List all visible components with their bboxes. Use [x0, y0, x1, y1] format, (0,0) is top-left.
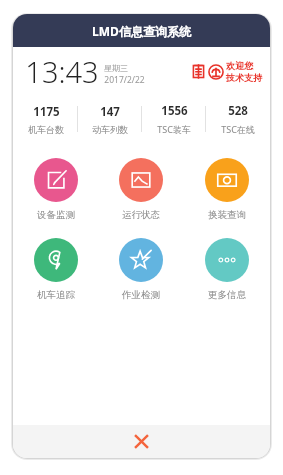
- staticText: 13:43: [25, 52, 99, 91]
- staticText: 机车台数: [28, 124, 64, 135]
- button[interactable]: 机车追踪: [13, 238, 98, 301]
- button[interactable]: 设备监测: [13, 158, 98, 221]
- staticText: 更多信息: [208, 289, 246, 301]
- staticText: 1175: [33, 104, 60, 120]
- staticText: 星期三: [104, 63, 128, 73]
- button[interactable]: 1175: [13, 96, 78, 142]
- staticText: 设备监测: [37, 209, 75, 221]
- button[interactable]: 关闭: [13, 425, 270, 458]
- button[interactable]: 528: [206, 96, 270, 142]
- staticText: 欢迎您: [226, 60, 253, 71]
- staticText: TSC装车: [157, 123, 191, 135]
- button[interactable]: 1556: [142, 96, 206, 142]
- button[interactable]: 作业检测: [98, 238, 184, 301]
- staticText: 动车列数: [92, 124, 128, 135]
- staticText: 528: [228, 103, 248, 119]
- staticText: 运行状态: [122, 209, 160, 221]
- button[interactable]: 换装查询: [184, 158, 270, 221]
- staticText: 1556: [161, 103, 188, 119]
- button[interactable]: 运行状态: [98, 158, 184, 221]
- staticText: TSC在线: [221, 123, 255, 135]
- staticText: 作业检测: [122, 289, 160, 301]
- staticText: 机车追踪: [37, 289, 75, 301]
- staticText: 换装查询: [208, 209, 246, 221]
- button[interactable]: 147: [78, 96, 142, 142]
- staticText: 147: [100, 104, 120, 120]
- staticText: 技术支持: [226, 72, 262, 83]
- staticText: LMD信息查询系统: [92, 23, 191, 39]
- button[interactable]: 更多信息: [184, 238, 270, 301]
- staticText: 2017/2/22: [104, 74, 145, 86]
